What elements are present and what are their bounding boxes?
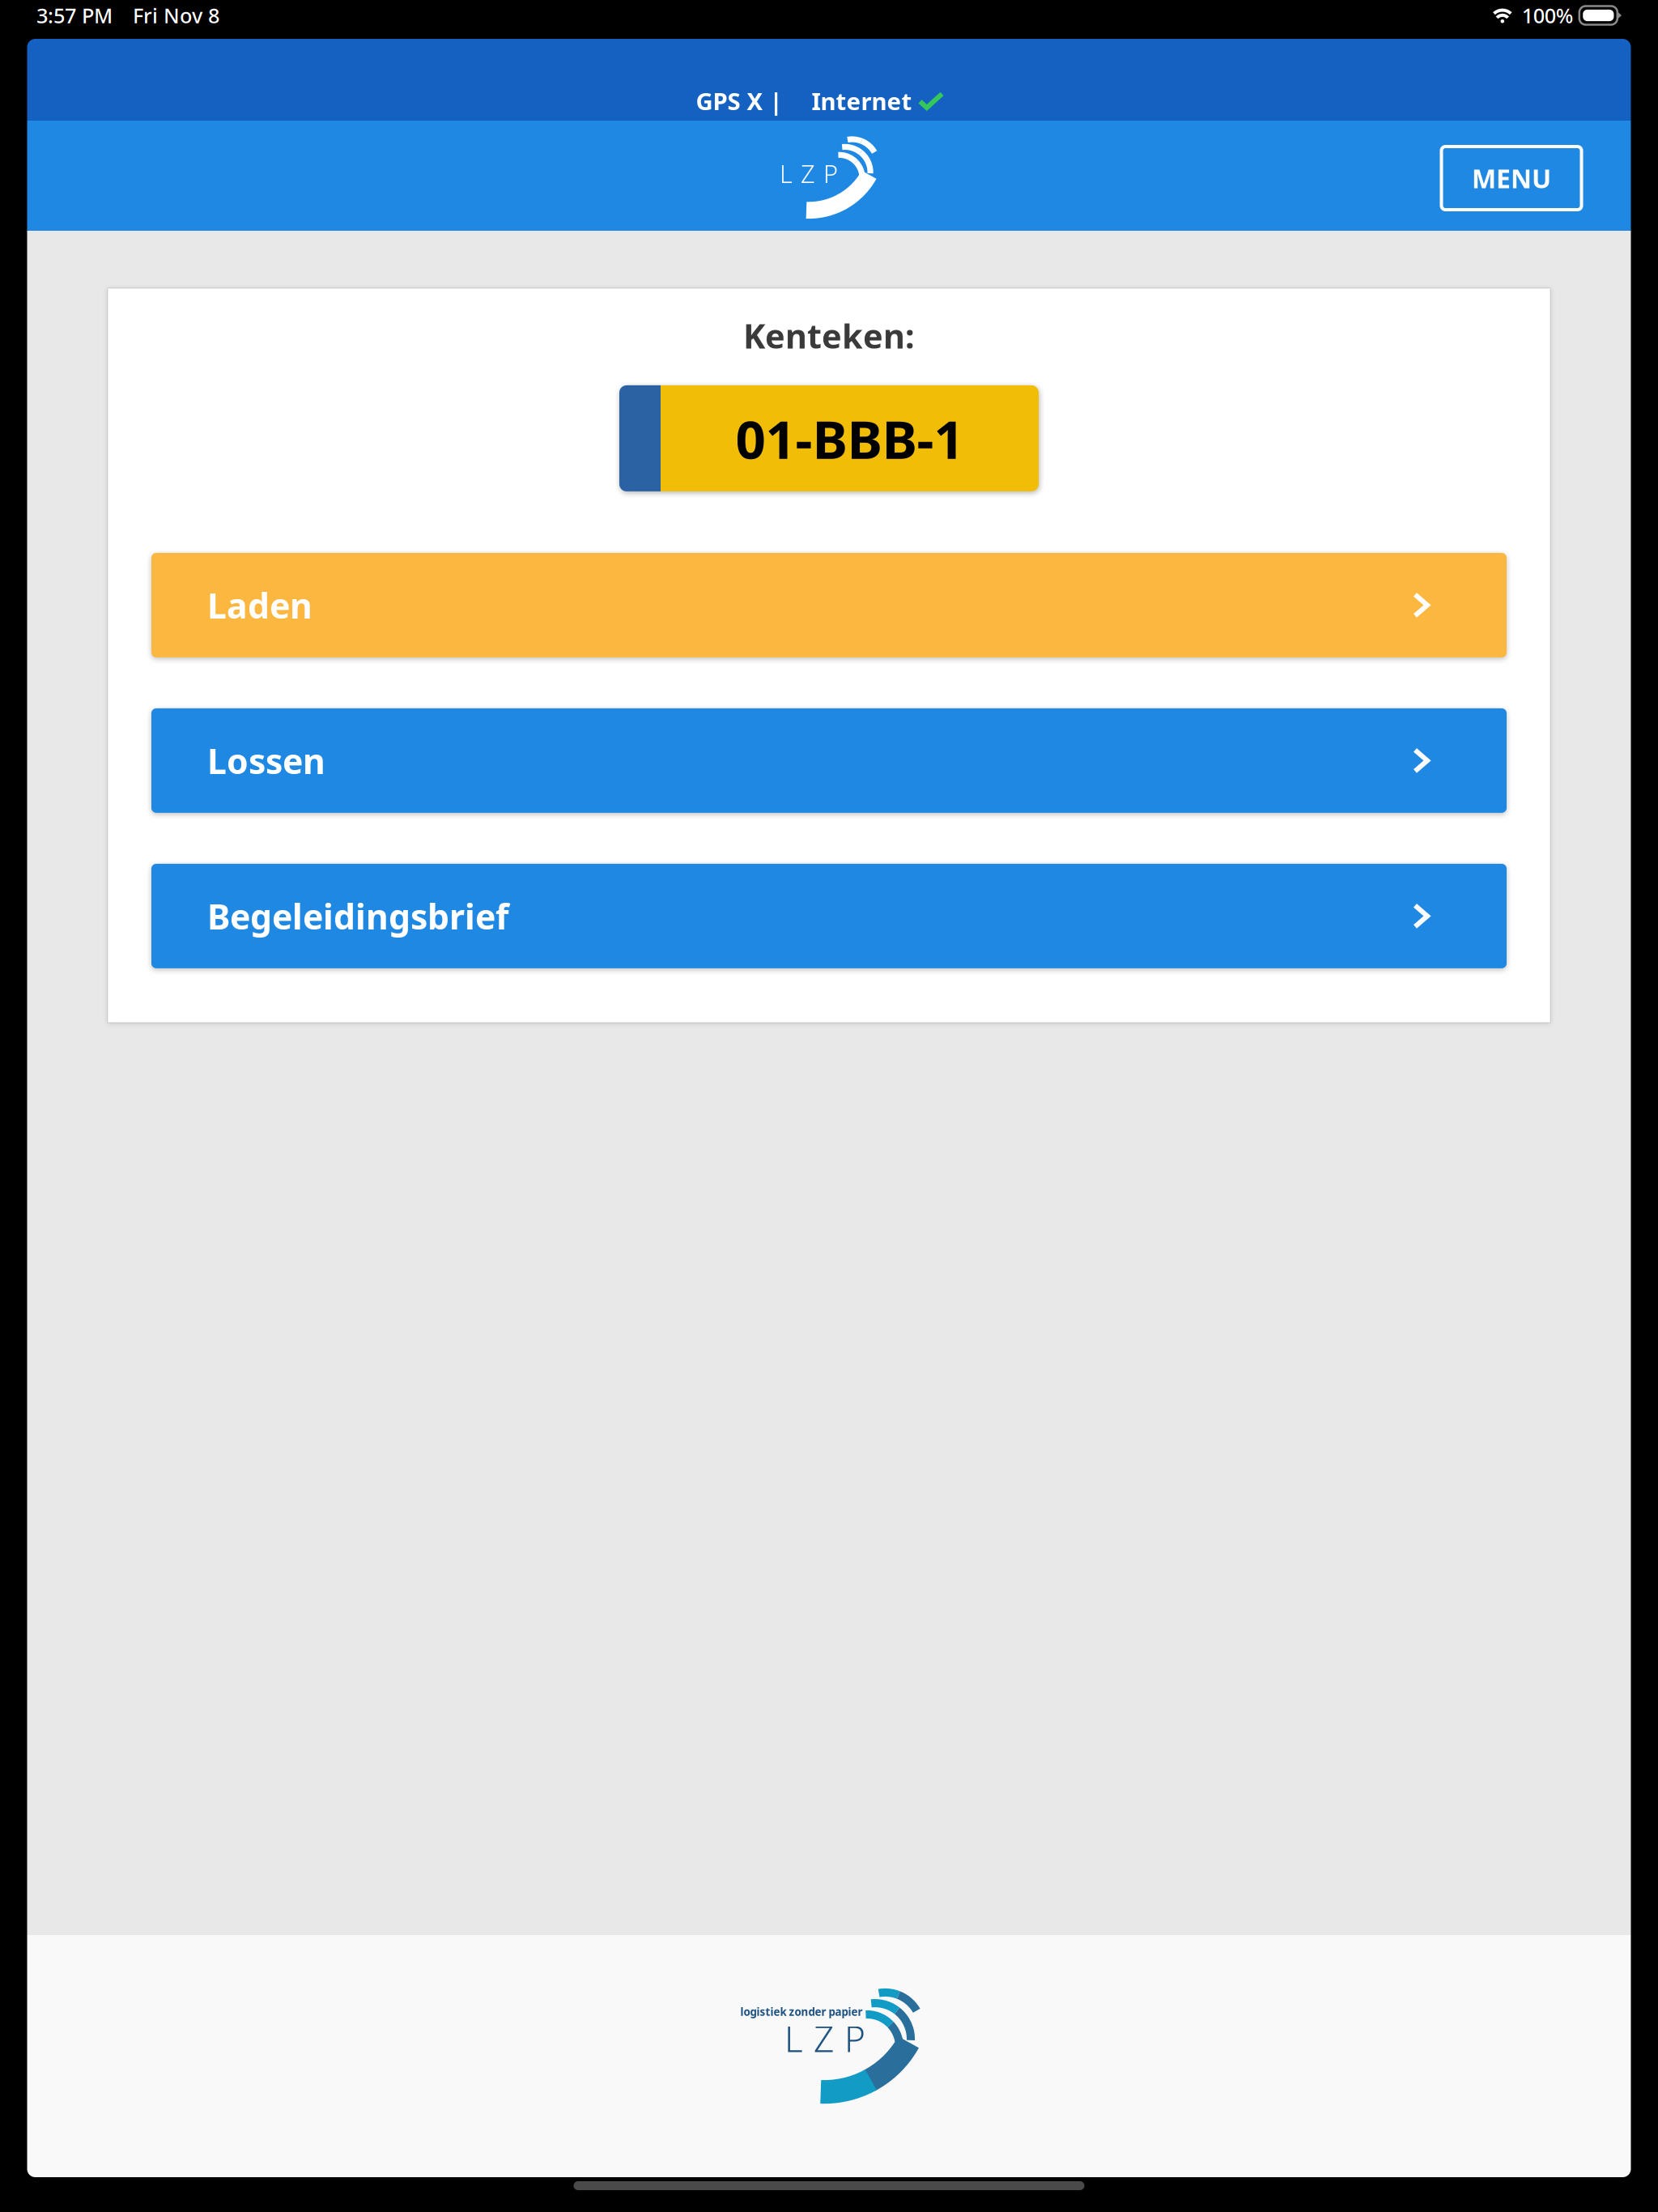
staticText: 01-BBB-1 <box>735 403 964 473</box>
staticText: GPS X | <box>696 85 782 117</box>
button[interactable]: Lossen <box>151 708 1507 813</box>
staticText: Lossen <box>207 738 325 784</box>
staticText: Begeleidingsbrief <box>207 893 509 939</box>
staticText: Fri Nov 8 <box>133 2 219 29</box>
staticText: Internet <box>812 85 912 117</box>
staticText: 3:57 PM <box>36 2 113 29</box>
staticText: logistiek zonder papier <box>740 2004 863 2019</box>
staticText: Kenteken: <box>743 313 915 358</box>
button[interactable]: MENU <box>1441 147 1581 210</box>
staticText: MENU <box>1472 161 1551 195</box>
staticText: Laden <box>207 582 312 628</box>
staticText: 100% <box>1522 2 1574 29</box>
staticText: LZP <box>784 2015 865 2062</box>
staticText: LZP <box>780 157 838 190</box>
button[interactable]: Begeleidingsbrief <box>151 864 1507 968</box>
button[interactable]: Laden <box>151 553 1507 657</box>
